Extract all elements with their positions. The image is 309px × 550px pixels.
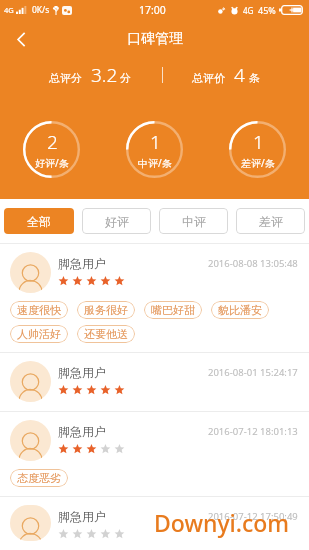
button[interactable]: 服务很好 bbox=[77, 301, 135, 319]
staticText: 中评/条 bbox=[138, 156, 172, 170]
staticText: 2016-08-08 13:05:48 bbox=[208, 257, 298, 270]
staticText: 好评/条 bbox=[35, 156, 69, 170]
staticText: 差评/条 bbox=[241, 156, 275, 170]
button[interactable]: 还要他送 bbox=[77, 325, 135, 343]
button[interactable]: 嘴巴好甜 bbox=[144, 301, 202, 319]
button[interactable]: 脚急用户 bbox=[0, 497, 309, 550]
staticText: 条 bbox=[249, 71, 260, 85]
staticText: 差评 bbox=[259, 214, 283, 229]
staticText: 2 bbox=[47, 129, 58, 155]
staticText: 0K/s bbox=[32, 4, 50, 16]
staticText: 脚急用户 bbox=[58, 509, 106, 524]
staticText: 嘴巴好甜 bbox=[151, 303, 195, 317]
staticText: 态度恶劣 bbox=[17, 471, 61, 485]
button[interactable]: 脚急用户 bbox=[0, 353, 309, 411]
staticText: 全部 bbox=[27, 214, 51, 229]
button[interactable]: 脚急用户 bbox=[0, 244, 309, 352]
staticText: Downyi.com bbox=[154, 507, 290, 538]
staticText: 好评 bbox=[105, 214, 129, 229]
staticText: 4 bbox=[234, 62, 245, 88]
staticText: 2016-07-12 18:01:13 bbox=[208, 425, 298, 438]
staticText: 貌比潘安 bbox=[218, 303, 262, 317]
staticText: 还要他送 bbox=[84, 327, 128, 341]
staticText: 17:00 bbox=[139, 3, 166, 17]
staticText: 总评分 bbox=[49, 71, 82, 85]
button[interactable]: 貌比潘安 bbox=[211, 301, 269, 319]
staticText: 口碑管理 bbox=[127, 30, 183, 48]
staticText: 分 bbox=[120, 71, 131, 85]
staticText: 3.2 bbox=[91, 62, 118, 88]
staticText: 脚急用户 bbox=[58, 365, 106, 380]
button[interactable]: Back bbox=[0, 22, 42, 56]
staticText: 总评价 bbox=[192, 71, 225, 85]
staticText: 人帅活好 bbox=[17, 327, 61, 341]
staticText: 速度很快 bbox=[17, 303, 61, 317]
button[interactable]: 速度很快 bbox=[10, 301, 68, 319]
button[interactable]: 态度恶劣 bbox=[10, 469, 68, 487]
staticText: 4G bbox=[4, 5, 14, 15]
staticText: 1 bbox=[253, 129, 264, 155]
staticText: 2016-07-12 17:50:49 bbox=[208, 510, 298, 523]
button[interactable]: 差评 bbox=[236, 208, 305, 234]
button[interactable]: 全部 bbox=[4, 208, 74, 234]
staticText: 脚急用户 bbox=[58, 256, 106, 271]
staticText: 4G bbox=[243, 5, 254, 16]
button[interactable]: 好评 bbox=[82, 208, 151, 234]
staticText: 服务很好 bbox=[84, 303, 128, 317]
button[interactable]: 中评 bbox=[159, 208, 228, 234]
staticText: 45% bbox=[258, 4, 276, 16]
button[interactable]: 人帅活好 bbox=[10, 325, 68, 343]
staticText: 2016-08-01 15:24:17 bbox=[208, 366, 298, 379]
staticText: 脚急用户 bbox=[58, 424, 106, 439]
staticText: 1 bbox=[150, 129, 161, 155]
staticText: 中评 bbox=[182, 214, 206, 229]
button[interactable]: 脚急用户 bbox=[0, 412, 309, 496]
